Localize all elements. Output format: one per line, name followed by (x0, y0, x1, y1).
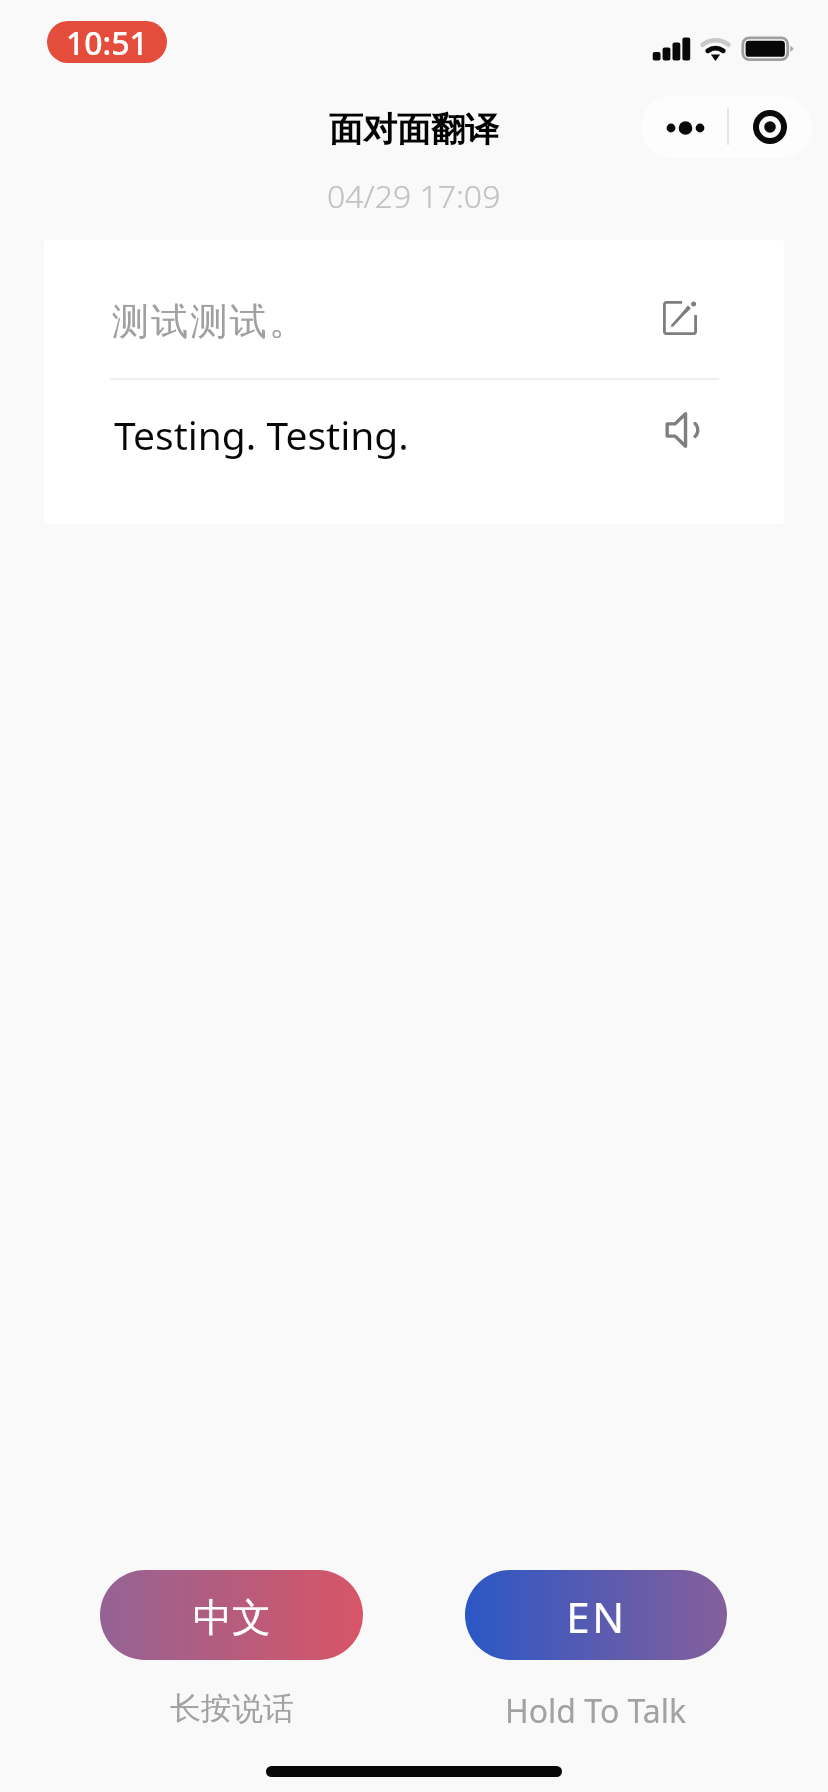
other: Signal, Wi-Fi and battery status (640, 20, 810, 70)
staticText: 10:51 (66, 21, 148, 63)
button[interactable]: Testing. Testing. (44, 380, 784, 524)
button[interactable]: 测试测试。 (44, 240, 784, 378)
staticText: EN (566, 1588, 627, 1645)
staticText: Hold To Talk (505, 1689, 687, 1733)
staticText: 04/29 17:09 (327, 174, 501, 218)
staticText: Testing. Testing. (114, 408, 409, 461)
button[interactable]: Play translation audio (645, 392, 721, 468)
staticText: 测试测试。 (111, 298, 307, 345)
button[interactable]: More options (641, 96, 727, 158)
button[interactable]: EN (465, 1570, 727, 1660)
staticText: 长按说话 (170, 1689, 294, 1728)
staticText: 面对面翻译 (329, 108, 499, 151)
staticText: 中文 (193, 1593, 271, 1642)
button[interactable]: Close mini program (729, 96, 812, 158)
button[interactable]: Edit text (642, 280, 718, 356)
button[interactable]: 中文 (100, 1570, 363, 1660)
